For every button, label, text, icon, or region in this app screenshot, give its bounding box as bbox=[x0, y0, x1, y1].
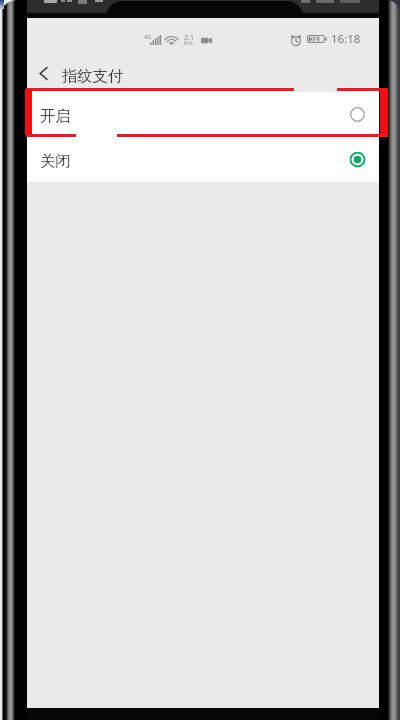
button[interactable]: 开启 bbox=[27, 92, 379, 137]
staticText: 74 bbox=[310, 35, 319, 43]
button[interactable]: 关闭 bbox=[27, 137, 379, 182]
staticText: 4G bbox=[144, 33, 152, 40]
button[interactable]: Back bbox=[27, 56, 60, 91]
staticText: 2.1 bbox=[184, 33, 194, 43]
staticText: 16:18 bbox=[331, 31, 361, 47]
staticText: 开启 bbox=[40, 106, 71, 125]
staticText: K/s bbox=[184, 39, 193, 47]
staticText: 关闭 bbox=[40, 151, 71, 170]
staticText: 指纹支付 bbox=[62, 66, 124, 85]
